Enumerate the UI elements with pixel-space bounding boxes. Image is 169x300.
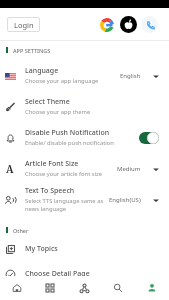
button[interactable]: Login <box>7 17 40 32</box>
button[interactable]: Select Theme <box>0 91 169 122</box>
button[interactable]: Sign in with phone <box>141 16 158 33</box>
staticText: Choose your app language <box>25 77 99 85</box>
staticText: Select Theme <box>25 97 70 107</box>
staticText: Login <box>14 20 34 30</box>
staticText: English(US) <box>109 196 141 204</box>
button[interactable]: Sign in with Google <box>98 16 115 33</box>
button[interactable]: Categories <box>33 276 67 300</box>
button[interactable]: Disable Push Notification <box>0 122 169 153</box>
staticText: Medium <box>117 165 141 173</box>
staticText: My Topics <box>25 244 58 254</box>
button[interactable]: Search <box>101 276 135 300</box>
button[interactable]: Language <box>0 60 169 91</box>
button[interactable]: Sign in with Apple <box>120 16 137 33</box>
button[interactable]: A <box>0 153 169 184</box>
staticText: A <box>6 162 14 176</box>
staticText: English <box>120 72 141 80</box>
staticText: Disable Push Notification <box>25 128 110 138</box>
staticText: Language <box>25 66 59 76</box>
button[interactable]: Medium <box>117 165 159 173</box>
staticText: Choose Detail Page <box>25 269 90 279</box>
button[interactable]: English(US) <box>109 196 159 204</box>
button[interactable]: Home <box>0 276 33 300</box>
button[interactable]: Profile <box>135 276 169 300</box>
button[interactable]: Network <box>67 276 101 300</box>
staticText: Article Font Size <box>25 159 79 169</box>
button[interactable]: English <box>120 72 159 80</box>
button[interactable]: Text To Speech <box>0 184 169 215</box>
staticText: APP SETTINGS <box>13 47 51 54</box>
staticText: Choose your app theme <box>25 108 91 116</box>
button[interactable]: Choose Detail Page <box>0 261 169 286</box>
staticText: Choose your article font size <box>25 170 103 178</box>
staticText: Other <box>13 227 29 234</box>
button[interactable]: My Topics <box>0 236 169 261</box>
button[interactable]: Disable push notification toggle <box>139 132 159 144</box>
staticText: Text To Speech <box>25 186 75 196</box>
staticText: Select TTS language same as news languag… <box>25 197 104 213</box>
staticText: Enable/ disable push notification <box>25 139 114 147</box>
